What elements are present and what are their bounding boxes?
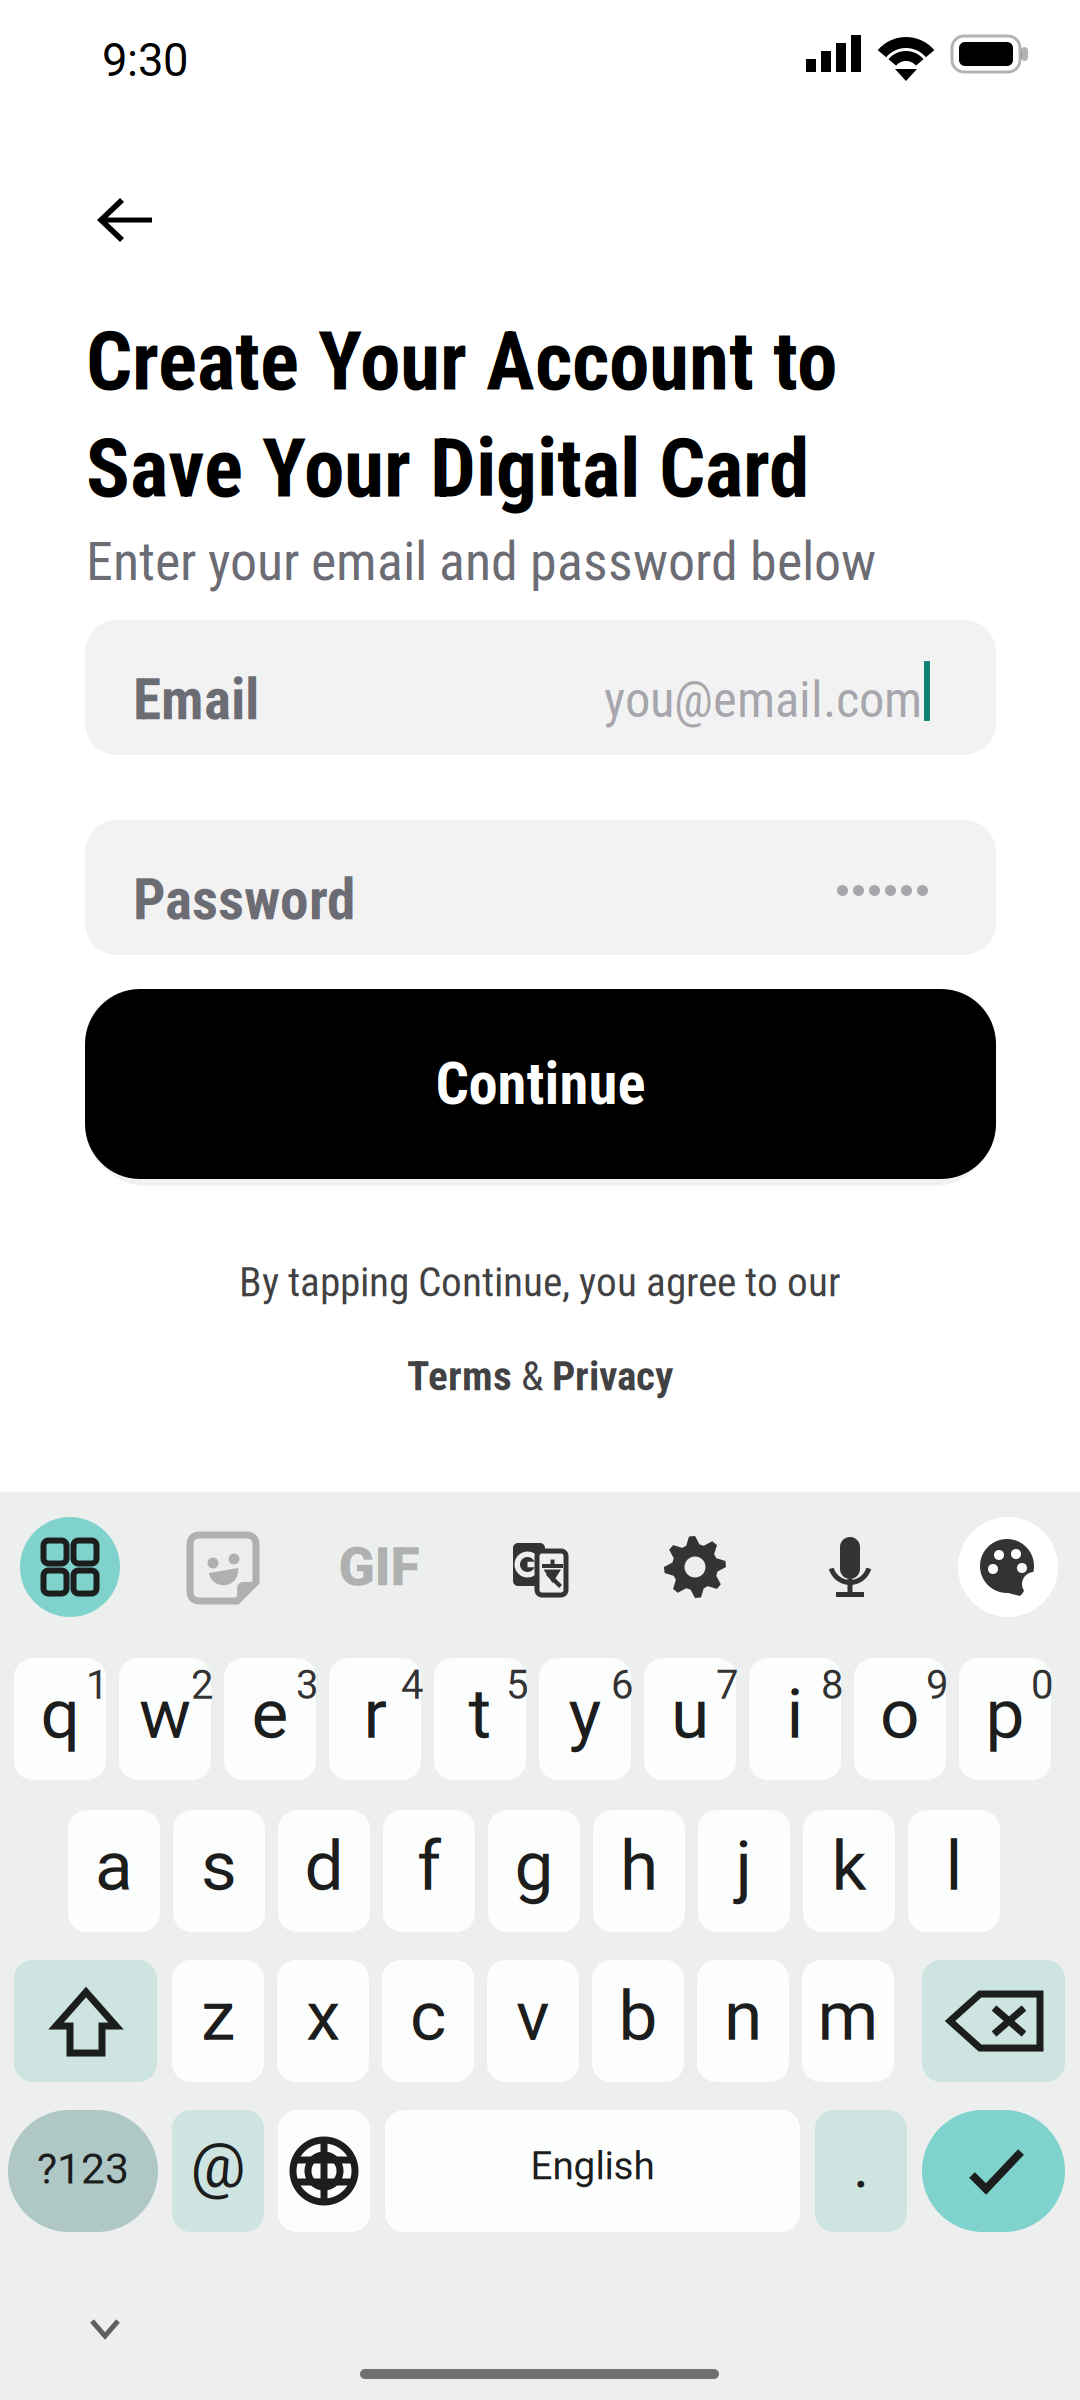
staticText: 4: [401, 1662, 423, 1708]
button[interactable]: a: [68, 1810, 160, 1932]
staticText: 1: [86, 1662, 108, 1708]
button[interactable]: ?123: [8, 2110, 158, 2232]
button[interactable]: p: [959, 1658, 1051, 1780]
staticText: .: [853, 2130, 869, 2202]
button[interactable]: Continue: [85, 989, 996, 1179]
staticText: @: [190, 2130, 245, 2202]
button[interactable]: Password: [85, 820, 996, 955]
staticText: Terms: [407, 1352, 512, 1400]
button[interactable]: Terms: [407, 1352, 512, 1400]
staticText: k: [831, 1825, 866, 1907]
button[interactable]: o: [854, 1658, 946, 1780]
button[interactable]: @: [172, 2110, 264, 2232]
staticText: 0: [1031, 1662, 1053, 1708]
staticText: b: [618, 1975, 657, 2057]
staticText: Create Your Account to: [86, 314, 837, 370]
staticText: 2: [191, 1662, 213, 1708]
staticText: 9:30: [102, 34, 188, 78]
button[interactable]: Shift: [14, 1960, 157, 2082]
button[interactable]: f: [383, 1810, 475, 1932]
staticText: By tapping Continue, you agree to our: [239, 1258, 841, 1300]
staticText: j: [735, 1825, 752, 1907]
staticText: GIF: [338, 1536, 419, 1598]
button[interactable]: Keyboard modes: [20, 1517, 120, 1617]
button[interactable]: q: [14, 1658, 106, 1780]
button[interactable]: s: [173, 1810, 265, 1932]
staticText: y: [568, 1673, 601, 1755]
button[interactable]: k: [803, 1810, 895, 1932]
staticText: i: [786, 1673, 803, 1755]
button[interactable]: Privacy: [552, 1352, 673, 1400]
staticText: Continue: [435, 1050, 645, 1118]
staticText: o: [880, 1673, 920, 1755]
staticText: 9: [926, 1662, 948, 1708]
staticText: Email: [133, 666, 259, 733]
staticText: f: [417, 1825, 441, 1907]
staticText: z: [201, 1975, 235, 2057]
staticText: n: [724, 1975, 762, 2057]
staticText: English: [530, 2143, 654, 2189]
staticText: 7: [716, 1662, 738, 1708]
button[interactable]: GIF search: [333, 1521, 425, 1613]
button[interactable]: w: [119, 1658, 211, 1780]
staticText: l: [945, 1825, 962, 1907]
staticText: h: [620, 1825, 658, 1907]
staticText: x: [306, 1975, 340, 2057]
staticText: Enter your email and password below: [86, 530, 876, 576]
button[interactable]: b: [592, 1960, 684, 2082]
button[interactable]: Back: [74, 178, 184, 262]
staticText: Save Your Digital Card: [86, 421, 809, 477]
staticText: 6: [611, 1662, 633, 1708]
button[interactable]: English: [385, 2110, 800, 2232]
button[interactable]: r: [329, 1658, 421, 1780]
button[interactable]: h: [593, 1810, 685, 1932]
button[interactable]: Email: [85, 620, 996, 755]
button[interactable]: Keyboard settings: [649, 1521, 741, 1613]
staticText: t: [468, 1673, 491, 1755]
staticText: &: [512, 1352, 552, 1400]
button[interactable]: j: [698, 1810, 790, 1932]
staticText: a: [95, 1825, 133, 1907]
button[interactable]: u: [644, 1658, 736, 1780]
button[interactable]: g: [488, 1810, 580, 1932]
button[interactable]: n: [697, 1960, 789, 2082]
button[interactable]: i: [749, 1658, 841, 1780]
staticText: e: [251, 1673, 288, 1755]
button[interactable]: Hide keyboard: [55, 2284, 155, 2374]
button[interactable]: .: [815, 2110, 907, 2232]
staticText: r: [363, 1673, 386, 1755]
button[interactable]: v: [487, 1960, 579, 2082]
staticText: ?123: [37, 2144, 129, 2194]
staticText: you@email.com: [604, 670, 922, 729]
button[interactable]: Stickers: [176, 1521, 268, 1613]
button[interactable]: m: [802, 1960, 894, 2082]
button[interactable]: Switch language: [278, 2110, 370, 2232]
button[interactable]: t: [434, 1658, 526, 1780]
staticText: Privacy: [552, 1352, 673, 1400]
button[interactable]: z: [172, 1960, 264, 2082]
staticText: 8: [821, 1662, 843, 1708]
button[interactable]: e: [224, 1658, 316, 1780]
button[interactable]: Themes: [958, 1517, 1058, 1617]
button[interactable]: c: [382, 1960, 474, 2082]
staticText: g: [514, 1825, 553, 1907]
button[interactable]: y: [539, 1658, 631, 1780]
button[interactable]: Enter: [922, 2110, 1065, 2232]
staticText: 3: [296, 1662, 318, 1708]
staticText: d: [304, 1825, 343, 1907]
staticText: c: [410, 1975, 446, 2057]
button[interactable]: Translate: [492, 1521, 584, 1613]
staticText: v: [516, 1975, 550, 2057]
staticText: 5: [506, 1662, 528, 1708]
staticText: Password: [133, 866, 355, 933]
button[interactable]: l: [908, 1810, 1000, 1932]
staticText: m: [817, 1975, 878, 2057]
button[interactable]: Backspace: [922, 1960, 1065, 2082]
staticText: w: [139, 1673, 191, 1755]
button[interactable]: d: [278, 1810, 370, 1932]
staticText: u: [671, 1673, 709, 1755]
staticText: q: [40, 1673, 79, 1755]
button[interactable]: x: [277, 1960, 369, 2082]
button[interactable]: Voice input: [804, 1521, 896, 1613]
staticText: p: [985, 1673, 1024, 1755]
